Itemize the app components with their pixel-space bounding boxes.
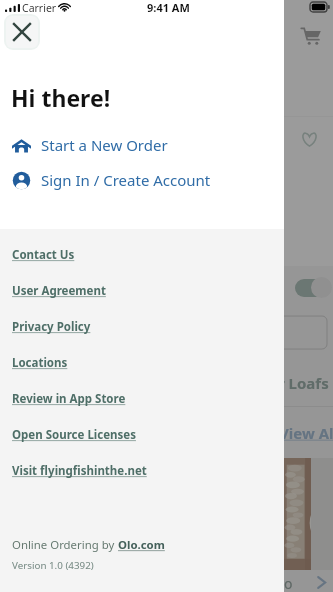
- staticText: User Agreement: [12, 283, 106, 299]
- staticText: Open Source Licenses: [12, 427, 136, 443]
- staticText: Visit flyingfishinthe.net: [12, 463, 147, 479]
- button[interactable]: Contact Us: [12, 244, 75, 266]
- button[interactable]: View All: [279, 423, 333, 443]
- button[interactable]: Favorite: [300, 130, 319, 149]
- button[interactable]: Olo.com: [118, 537, 165, 553]
- button[interactable]: Start a New Order: [12, 130, 272, 160]
- button[interactable]: Cart: [300, 25, 321, 46]
- staticText: 9:41 AM: [147, 0, 190, 15]
- staticText: o: [284, 574, 293, 592]
- staticText: Hi there!: [11, 82, 111, 113]
- button[interactable]: Sign In / Create Account: [12, 165, 272, 195]
- staticText: Review in App Store: [12, 391, 126, 407]
- staticText: Sign In / Create Account: [41, 170, 211, 190]
- staticText: r Loafs: [278, 373, 329, 393]
- staticText: Start a New Order: [41, 135, 168, 155]
- staticText: Carrier: [22, 1, 57, 15]
- button[interactable]: Locations: [12, 352, 68, 374]
- button[interactable]: Review in App Store: [12, 388, 126, 410]
- button[interactable]: Close menu: [6, 16, 38, 48]
- button[interactable]: Toggle: [295, 279, 329, 297]
- button[interactable]: Privacy Policy: [12, 316, 91, 338]
- staticText: Version 1.0 (4392): [12, 559, 94, 572]
- staticText: Privacy Policy: [12, 319, 91, 335]
- button[interactable]: Open Source Licenses: [12, 424, 136, 446]
- staticText: Online Ordering by: [12, 537, 118, 553]
- staticText: Contact Us: [12, 247, 75, 263]
- staticText: Locations: [12, 355, 68, 371]
- button[interactable]: Visit flyingfishinthe.net: [12, 460, 147, 482]
- button[interactable]: User Agreement: [12, 280, 106, 302]
